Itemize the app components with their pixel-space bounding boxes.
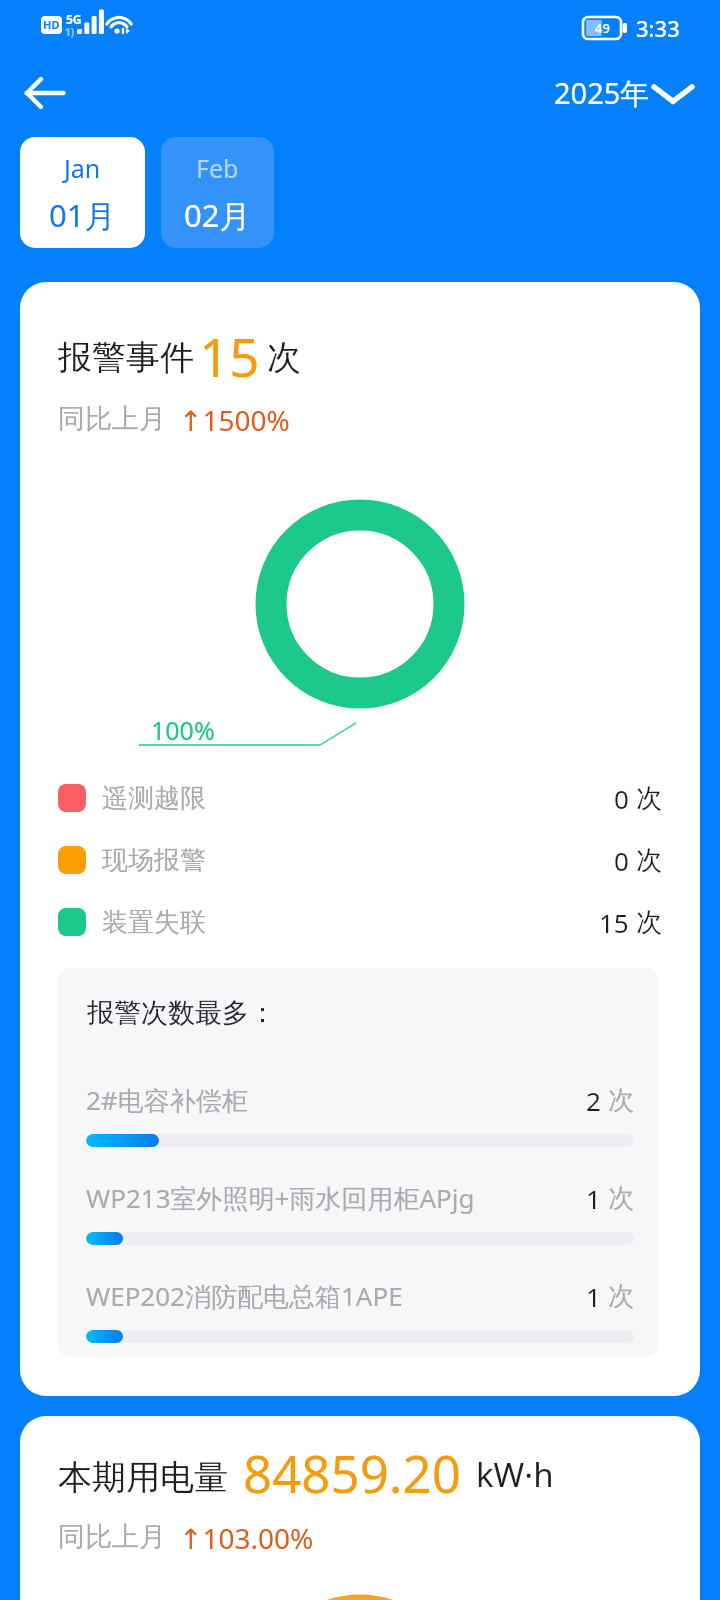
button[interactable]: WP213室外照明+雨水回用柜APjg [86, 1180, 634, 1245]
staticText: 1) [65, 25, 75, 39]
staticText: kW·h [476, 1452, 554, 1497]
staticText: 报警次数最多： [87, 996, 276, 1030]
button[interactable]: 现场报警 [20, 829, 700, 891]
staticText: 2 [586, 1083, 601, 1118]
button[interactable]: 装置失联 [20, 891, 700, 953]
staticText: 同比上月 [58, 402, 166, 436]
staticText: 次 [267, 336, 301, 379]
staticText: 1 [586, 1181, 601, 1216]
staticText: 本期用电量 [58, 1456, 228, 1499]
staticText: WP213室外照明+雨水回用柜APjg [86, 1180, 475, 1216]
staticText: 次 [608, 1182, 634, 1215]
button[interactable]: Back [21, 69, 69, 117]
staticText: 0 [614, 843, 629, 878]
staticText: ↑1500% [179, 401, 290, 439]
staticText: 装置失联 [102, 906, 206, 939]
staticText: 84859.20 [243, 1438, 461, 1507]
staticText: 遥测越限 [102, 782, 206, 815]
button[interactable]: WEP202消防配电总箱1APE [86, 1278, 634, 1343]
staticText: 02月 [184, 194, 251, 236]
staticText: 现场报警 [102, 844, 206, 877]
staticText: 次 [636, 906, 662, 939]
staticText: 3:33 [636, 13, 680, 43]
staticText: 2#电容补偿柜 [86, 1082, 248, 1118]
button[interactable]: Jan [20, 137, 145, 248]
staticText: 15 [599, 905, 629, 940]
button[interactable]: 遥测越限 [20, 767, 700, 829]
staticText: ↑103.00% [179, 1519, 314, 1557]
staticText: 01月 [49, 194, 116, 236]
staticText: 次 [636, 844, 662, 877]
staticText: 次 [608, 1084, 634, 1117]
staticText: 1 [586, 1279, 601, 1314]
staticText: Feb [196, 151, 239, 185]
staticText: 100% [151, 713, 215, 747]
staticText: 5G [66, 11, 82, 27]
button[interactable]: 2#电容补偿柜 [86, 1082, 634, 1147]
staticText: WEP202消防配电总箱1APE [86, 1278, 403, 1314]
staticText: Jan [64, 151, 101, 185]
button[interactable]: Feb [161, 137, 274, 248]
staticText: 2025年 [554, 73, 650, 113]
staticText: 同比上月 [58, 1520, 166, 1554]
button[interactable]: 2025年 [548, 66, 699, 120]
staticText: 次 [608, 1280, 634, 1313]
staticText: 次 [636, 782, 662, 815]
other: Select year [651, 79, 695, 107]
staticText: 报警事件 [58, 336, 194, 379]
staticText: HD [43, 17, 60, 32]
staticText: 0 [614, 781, 629, 816]
staticText: 49 [595, 19, 610, 37]
staticText: 15 [199, 320, 260, 392]
